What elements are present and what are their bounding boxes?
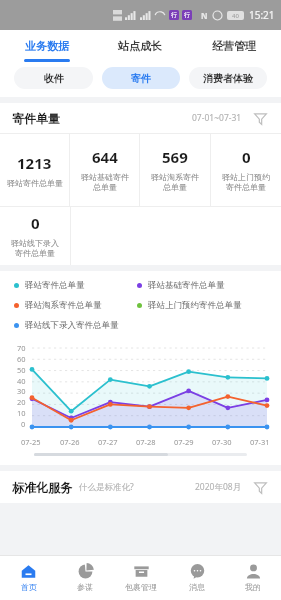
staticText: 行 [171, 11, 177, 19]
staticText: 15:21 [249, 8, 275, 22]
staticText: 07-29 [174, 437, 194, 447]
staticText: 站点成长 [118, 39, 162, 53]
button[interactable]: 驿站线下录入寄件总单量 [14, 320, 137, 331]
staticText: 经营管理 [212, 39, 256, 53]
staticText: 1213 [17, 153, 52, 173]
staticText: 驿站线下录入寄件总单量 [25, 320, 119, 331]
staticText: 569 [162, 147, 188, 167]
staticText: 07-30 [212, 437, 232, 447]
button[interactable]: 首页 [0, 556, 57, 600]
button[interactable]: 0 [0, 207, 70, 265]
staticText: 什么是标准化? [79, 481, 134, 493]
staticText: 40 [17, 376, 26, 386]
staticText: 驿站上门预约 寄件总单量 [222, 172, 270, 193]
staticText: 10 [17, 408, 26, 418]
button[interactable]: 收件 [14, 67, 93, 89]
button[interactable]: 驿站淘系寄件总单量 [14, 300, 137, 311]
staticText: 驿站上门预约寄件总单量 [148, 300, 242, 311]
button[interactable]: 消息 [169, 556, 225, 600]
staticText: 07-27 [98, 437, 118, 447]
staticText: 驿站淘系寄件总单量 [25, 300, 102, 311]
button[interactable]: 0 [211, 134, 281, 206]
staticText: 20 [17, 397, 26, 407]
staticText: 0 [31, 213, 40, 233]
staticText: N [201, 10, 208, 21]
button[interactable]: 筛选 [251, 478, 269, 496]
staticText: 我的 [245, 582, 261, 592]
button[interactable]: 筛选 [251, 109, 269, 127]
staticText: 07-01~07-31 [192, 112, 242, 124]
staticText: 驿站淘系寄件 总单量 [151, 172, 199, 193]
staticText: 07-25 [21, 437, 41, 447]
staticText: 消息 [189, 582, 205, 592]
button[interactable]: 消费者体验 [189, 67, 267, 89]
staticText: 收件 [44, 72, 64, 85]
staticText: 0 [242, 147, 251, 167]
staticText: 寄件单量 [12, 111, 60, 126]
button[interactable]: 什么是标准化? [79, 481, 134, 493]
button[interactable]: 驿站基础寄件总单量 [137, 280, 273, 291]
staticText: 驿站基础寄件 总单量 [81, 172, 129, 193]
staticText: 30 [17, 386, 26, 396]
staticText: 消费者体验 [203, 72, 253, 85]
button[interactable]: 经营管理 [187, 30, 281, 62]
staticText: 行 [184, 11, 190, 19]
staticText: 标准化服务 [12, 480, 72, 495]
staticText: 07-26 [60, 437, 80, 447]
staticText: 07-31 [250, 437, 270, 447]
staticText: 70 [17, 343, 26, 353]
button[interactable]: 驿站寄件总单量 [14, 280, 137, 291]
staticText: 2020年08月 [195, 481, 242, 493]
staticText: 驿站线下录入 寄件总单量 [11, 238, 59, 259]
button[interactable]: 寄件 [102, 67, 180, 89]
staticText: 驿站基础寄件总单量 [148, 280, 225, 291]
staticText: 驿站寄件总单量 [7, 178, 63, 188]
staticText: 首页 [21, 582, 37, 592]
staticText: 50 [17, 365, 26, 375]
button[interactable]: 业务数据 [0, 30, 93, 62]
staticText: 驿站寄件总单量 [25, 280, 85, 291]
staticText: 包裹管理 [125, 582, 157, 592]
button[interactable]: 644 [70, 134, 139, 206]
staticText: 参谋 [77, 582, 93, 592]
staticText: 业务数据 [25, 39, 69, 53]
button[interactable]: 站点成长 [93, 30, 187, 62]
staticText: 0 [21, 419, 26, 429]
button[interactable]: 驿站上门预约寄件总单量 [137, 300, 273, 311]
staticText: 07-28 [136, 437, 156, 447]
staticText: 60 [17, 354, 26, 364]
staticText: 644 [92, 147, 118, 167]
button[interactable]: 569 [140, 134, 210, 206]
staticText: 寄件 [131, 72, 151, 85]
button[interactable]: 参谋 [57, 556, 113, 600]
button[interactable]: 我的 [225, 556, 281, 600]
button[interactable]: 1213 [0, 134, 69, 206]
staticText: 40 [232, 12, 239, 20]
button[interactable]: 包裹管理 [113, 556, 169, 600]
